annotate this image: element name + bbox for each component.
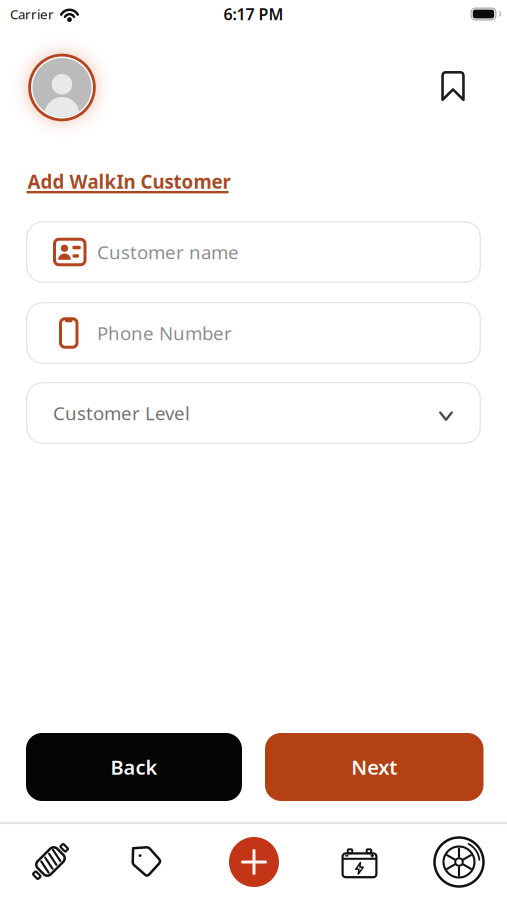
button[interactable]: Customer Level <box>26 382 481 444</box>
staticText: Customer Level <box>53 401 190 425</box>
button[interactable]: Battery <box>314 825 404 900</box>
button[interactable]: Services <box>5 823 95 899</box>
staticText: Customer name <box>97 240 239 264</box>
staticText: Add WalkIn Customer <box>27 169 230 194</box>
button[interactable]: Bookmarks <box>441 71 465 101</box>
staticText: 6:17 PM <box>223 3 283 25</box>
button[interactable]: Profile <box>28 54 95 121</box>
button[interactable]: Tires <box>414 824 504 900</box>
button[interactable]: Phone Number <box>26 302 481 364</box>
button[interactable]: Add <box>209 824 299 900</box>
staticText: Next <box>351 754 397 780</box>
button[interactable]: Tags <box>102 824 192 900</box>
button[interactable]: Back <box>26 733 242 801</box>
button[interactable]: Add WalkIn Customer <box>27 169 230 194</box>
button[interactable]: Customer name <box>26 221 481 283</box>
staticText: Back <box>110 754 157 780</box>
button[interactable]: Next <box>265 733 483 801</box>
staticText: Phone Number <box>97 321 232 345</box>
staticText: Carrier <box>10 5 54 23</box>
